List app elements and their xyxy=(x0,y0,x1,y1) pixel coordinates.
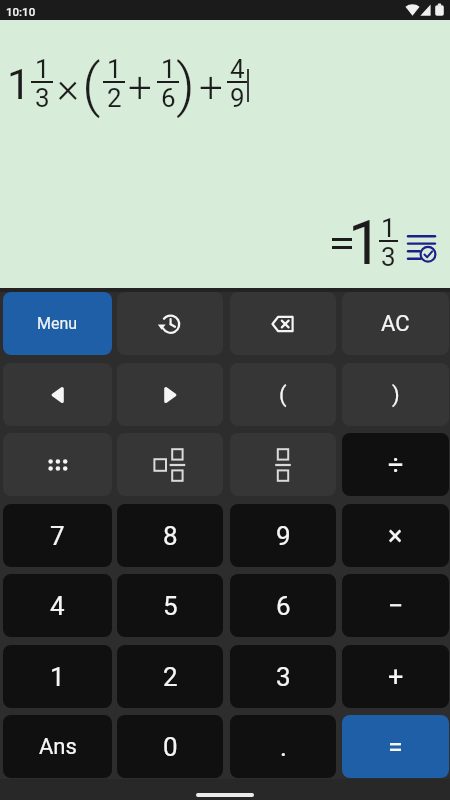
button[interactable]: 6 xyxy=(230,574,336,637)
staticText: 1 xyxy=(35,54,50,81)
staticText: 5 xyxy=(163,591,178,621)
staticText: 7 xyxy=(50,521,65,551)
staticText: . xyxy=(280,732,287,762)
button[interactable]: . xyxy=(230,715,336,778)
staticText: 6 xyxy=(276,591,291,621)
staticText: ) xyxy=(392,382,400,408)
button[interactable]: ( xyxy=(230,363,336,426)
button[interactable] xyxy=(230,292,336,355)
staticText: 1 xyxy=(161,54,176,81)
staticText: + xyxy=(128,63,152,112)
staticText: 3 xyxy=(35,83,50,110)
staticText: 1 xyxy=(381,213,396,240)
staticText: ÷ xyxy=(388,449,404,481)
staticText: 1 xyxy=(50,662,65,692)
button[interactable]: − xyxy=(342,574,449,637)
staticText: + xyxy=(199,63,223,112)
button[interactable]: 4 xyxy=(3,574,112,637)
staticText: = xyxy=(388,731,403,763)
staticText: 3 xyxy=(276,662,291,692)
staticText: 1 xyxy=(348,207,383,278)
button[interactable]: 9 xyxy=(230,504,336,567)
staticText: 10:10 xyxy=(6,5,36,18)
button[interactable] xyxy=(117,433,223,496)
button[interactable]: Ans xyxy=(3,715,112,778)
staticText: AC xyxy=(381,311,410,337)
staticText: 1 xyxy=(7,60,31,109)
button[interactable]: 7 xyxy=(3,504,112,567)
staticText: 8 xyxy=(163,521,178,551)
button[interactable] xyxy=(117,292,223,355)
button[interactable]: 0 xyxy=(117,715,223,778)
button[interactable]: = xyxy=(342,715,449,778)
staticText: 0 xyxy=(163,732,178,762)
button[interactable]: 2 xyxy=(117,645,223,708)
staticText: × xyxy=(388,520,403,552)
button[interactable] xyxy=(3,363,112,426)
button[interactable]: ) xyxy=(342,363,449,426)
staticText: + xyxy=(388,661,404,693)
button[interactable]: 5 xyxy=(117,574,223,637)
button[interactable]: 8 xyxy=(117,504,223,567)
staticText: 9 xyxy=(276,521,291,551)
staticText: Ans xyxy=(39,734,77,760)
button[interactable]: × xyxy=(342,504,449,567)
staticText: 1 xyxy=(107,54,122,81)
staticText: 2 xyxy=(107,83,122,110)
staticText: 9 xyxy=(230,83,245,110)
button[interactable] xyxy=(230,433,336,496)
staticText: ( xyxy=(279,382,287,408)
button[interactable]: AC xyxy=(342,292,449,355)
staticText: ) xyxy=(176,51,195,119)
staticText: × xyxy=(57,63,79,112)
staticText: 4 xyxy=(230,54,245,81)
button[interactable]: + xyxy=(342,645,449,708)
staticText: 6 xyxy=(161,83,176,110)
staticText: 4 xyxy=(50,591,65,621)
staticText: − xyxy=(388,590,404,622)
staticText: Menu xyxy=(37,314,78,333)
button[interactable]: 1 xyxy=(3,645,112,708)
button[interactable] xyxy=(117,363,223,426)
staticText: 3 xyxy=(381,242,396,269)
button[interactable]: ÷ xyxy=(342,433,449,496)
staticText: ( xyxy=(82,51,101,119)
staticText: 2 xyxy=(163,662,178,692)
button[interactable]: 3 xyxy=(230,645,336,708)
button[interactable] xyxy=(3,433,112,496)
button[interactable]: Menu xyxy=(3,292,112,355)
